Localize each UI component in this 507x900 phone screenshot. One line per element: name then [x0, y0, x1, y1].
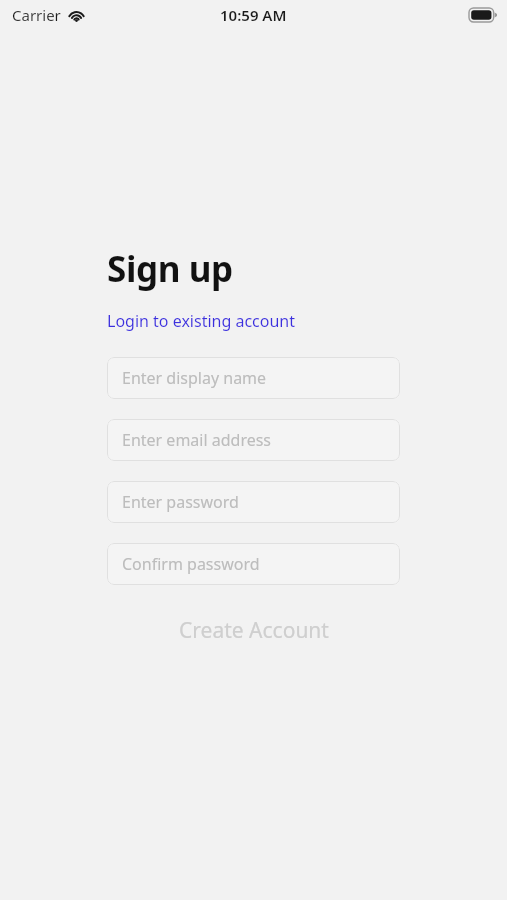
staticText: Enter display name — [122, 367, 267, 389]
other: Battery — [469, 8, 497, 22]
staticText: Login to existing account — [107, 310, 296, 332]
staticText: Confirm password — [122, 553, 260, 575]
staticText: Enter password — [122, 491, 239, 513]
staticText: Sign up — [107, 245, 233, 293]
staticText: 10:59 AM — [220, 5, 287, 25]
staticText: Enter email address — [122, 429, 272, 451]
staticText: Carrier — [12, 5, 61, 25]
button[interactable]: Enter email address — [107, 419, 400, 461]
button[interactable]: Create Account — [107, 608, 400, 652]
button[interactable]: Enter display name — [107, 357, 400, 399]
button[interactable]: Confirm password — [107, 543, 400, 585]
button[interactable]: Login to existing account — [107, 310, 296, 332]
button[interactable]: Enter password — [107, 481, 400, 523]
staticText: Create Account — [179, 616, 329, 645]
